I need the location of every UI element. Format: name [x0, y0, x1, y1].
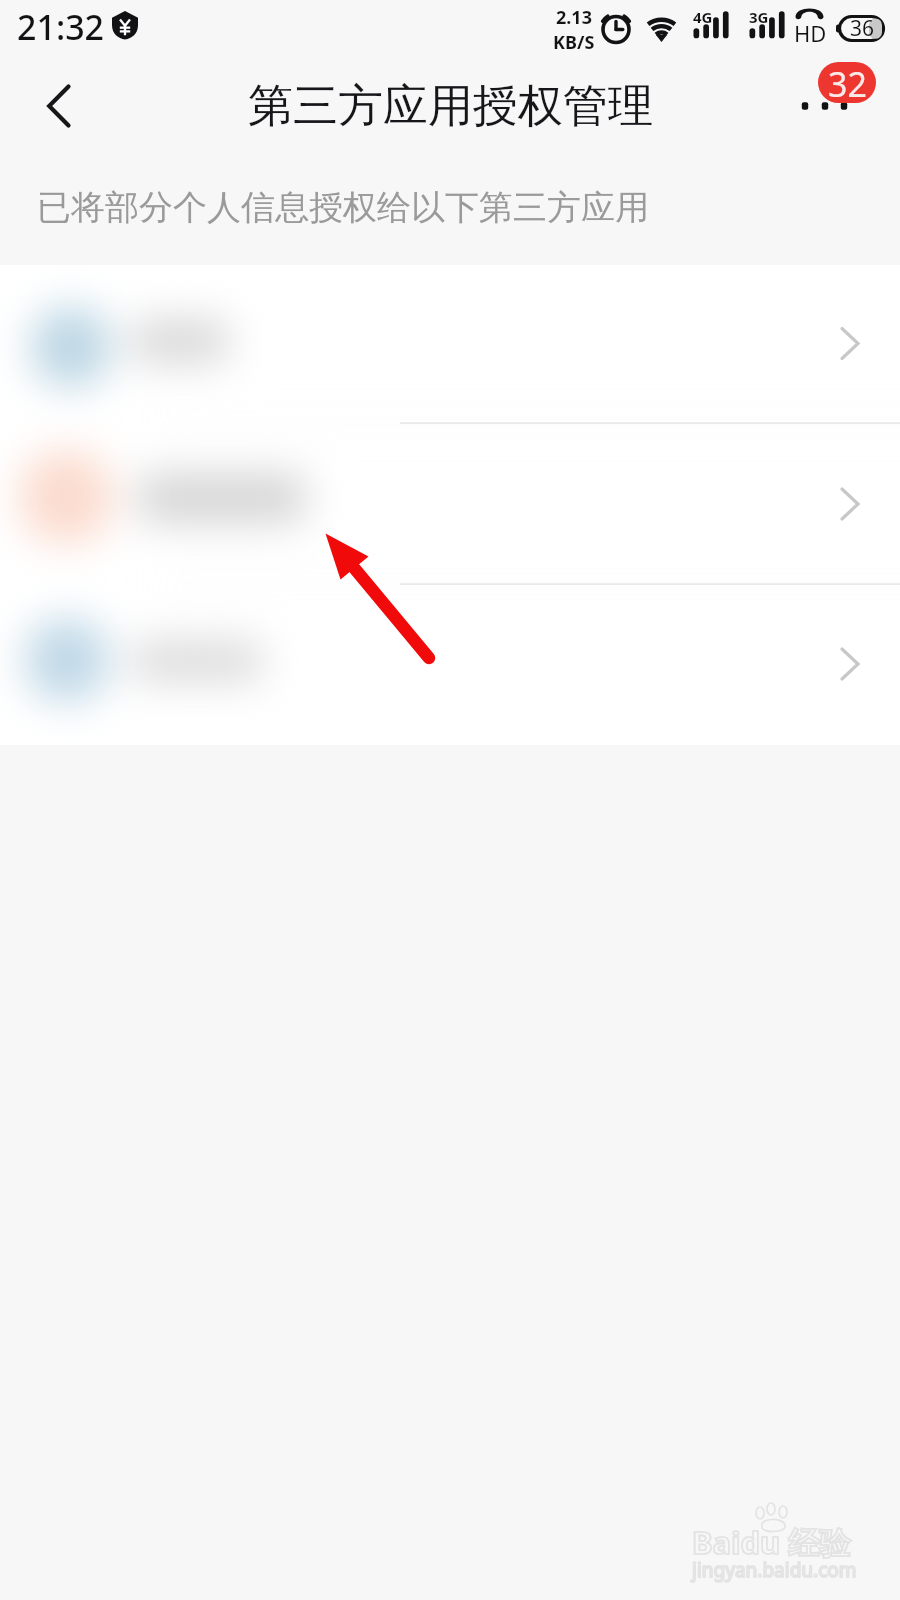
staticText: 21:32 — [17, 4, 105, 50]
button[interactable]: App authorization entry — [0, 425, 900, 585]
staticText: 2.13 — [556, 5, 592, 30]
button[interactable]: Back — [11, 62, 107, 158]
button[interactable]: App authorization entry — [0, 265, 900, 425]
staticText: HD — [794, 18, 827, 48]
staticText: 36 — [850, 14, 875, 43]
staticText: 第三方应用授权管理 — [248, 78, 653, 135]
staticText: Baidu 经验 — [692, 1521, 851, 1563]
staticText: KB/S — [553, 30, 595, 55]
button[interactable]: More options — [780, 56, 890, 164]
staticText: jingyan.baidu.com — [692, 1557, 857, 1583]
staticText: 3G — [749, 7, 769, 27]
staticText: 已将部分个人信息授权给以下第三方应用 — [37, 186, 649, 229]
button[interactable]: App authorization entry — [0, 585, 900, 745]
staticText: 4G — [693, 7, 713, 27]
staticText: 32 — [828, 62, 867, 102]
